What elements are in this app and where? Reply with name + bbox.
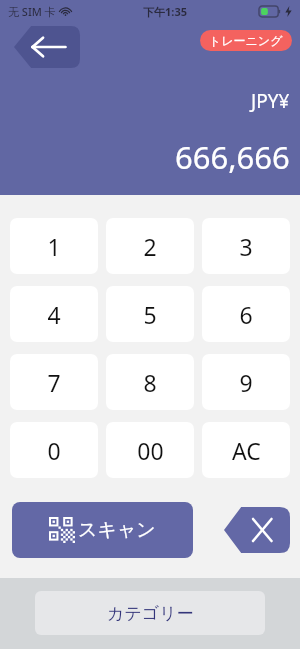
staticText: AC <box>232 435 261 466</box>
staticText: 8 <box>143 367 157 398</box>
button[interactable]: AC <box>202 422 290 478</box>
staticText: 无 SIM 卡 <box>8 4 56 19</box>
button[interactable]: 1 <box>10 218 98 274</box>
button[interactable]: 4 <box>10 286 98 342</box>
staticText: 666,666 <box>175 136 290 178</box>
button[interactable]: 2 <box>106 218 194 274</box>
staticText: スキャン <box>78 518 156 542</box>
button[interactable]: 6 <box>202 286 290 342</box>
button[interactable]: 3 <box>202 218 290 274</box>
button[interactable]: 0 <box>10 422 98 478</box>
staticText: 6 <box>239 299 253 330</box>
button[interactable]: Delete <box>224 507 290 553</box>
staticText: 5 <box>143 299 157 330</box>
staticText: 3 <box>239 231 253 262</box>
staticText: 1 <box>47 231 61 262</box>
staticText: 下午1:35 <box>143 4 187 19</box>
button[interactable]: Back <box>14 26 80 68</box>
button[interactable]: 00 <box>106 422 194 478</box>
staticText: 0 <box>47 435 61 466</box>
button[interactable]: 8 <box>106 354 194 410</box>
staticText: 9 <box>239 367 253 398</box>
button[interactable]: スキャン <box>12 502 193 558</box>
staticText: 7 <box>47 367 61 398</box>
staticText: 00 <box>137 435 164 466</box>
button[interactable]: 7 <box>10 354 98 410</box>
staticText: JPY¥ <box>251 88 290 114</box>
button[interactable]: トレーニング <box>200 30 292 51</box>
staticText: 4 <box>47 299 61 330</box>
staticText: 2 <box>143 231 157 262</box>
staticText: カテゴリー <box>107 603 194 624</box>
button[interactable]: 5 <box>106 286 194 342</box>
staticText: トレーニング <box>209 33 283 48</box>
button[interactable]: 9 <box>202 354 290 410</box>
button[interactable]: カテゴリー <box>35 591 265 635</box>
